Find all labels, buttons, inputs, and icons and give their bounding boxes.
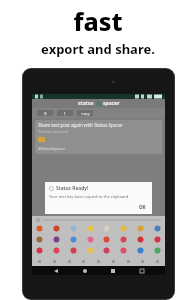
button[interactable]: Emoji xyxy=(53,236,60,243)
button[interactable]: Emoji xyxy=(137,225,144,232)
button[interactable]: Emoji xyxy=(120,236,127,243)
staticText: copy xyxy=(81,111,90,116)
button[interactable]: Emoji xyxy=(87,236,94,243)
button[interactable]: Emoji xyxy=(36,236,43,243)
staticText: export and share. xyxy=(41,40,155,58)
button[interactable]: Emoji xyxy=(87,247,94,254)
staticText: OK xyxy=(139,204,146,210)
staticText: Share text post again with Status Spacer xyxy=(38,122,123,128)
button[interactable]: I xyxy=(57,110,73,116)
button[interactable]: Emoji xyxy=(103,247,110,254)
button[interactable]: Menu xyxy=(137,266,146,275)
button[interactable]: copy xyxy=(77,110,93,116)
button[interactable]: Emoji xyxy=(154,236,161,243)
button[interactable]: Emoji xyxy=(154,247,161,254)
staticText: status xyxy=(78,100,94,107)
button[interactable]: Share text post again with Status Spacer xyxy=(35,120,162,154)
button[interactable]: Emoji xyxy=(53,225,60,232)
staticText: spacer xyxy=(103,100,120,107)
staticText: #StatusSpacer xyxy=(38,146,66,151)
button[interactable]: Home xyxy=(80,266,89,275)
staticText: fast xyxy=(73,4,123,38)
button[interactable]: Emoji xyxy=(36,225,43,232)
button[interactable]: Emoji xyxy=(70,247,77,254)
button[interactable]: Emoji xyxy=(103,225,110,232)
button[interactable]: Emoji xyxy=(70,225,77,232)
staticText: Status Ready! xyxy=(56,185,89,192)
button[interactable]: Emoji xyxy=(154,225,161,232)
staticText: I xyxy=(64,111,66,116)
staticText: Your text has been copied to the clipboa… xyxy=(49,194,129,199)
button[interactable]: Recents xyxy=(108,266,117,275)
staticText: B xyxy=(44,111,47,116)
button[interactable]: Emoji xyxy=(36,247,43,254)
button[interactable]: Emoji xyxy=(87,225,94,232)
button[interactable]: Emoji xyxy=(137,236,144,243)
button[interactable]: Emoji xyxy=(103,236,110,243)
button[interactable]: Emoji xyxy=(53,247,60,254)
button[interactable]: Emoji xyxy=(120,225,127,232)
button[interactable]: B xyxy=(37,110,53,116)
button[interactable]: Emoji xyxy=(137,247,144,254)
button[interactable]: Emoji xyxy=(70,236,77,243)
button[interactable]: Back xyxy=(51,266,60,275)
button[interactable]: Emoji xyxy=(120,247,127,254)
staticText: Further yourself xyxy=(38,129,69,134)
button[interactable]: OK xyxy=(137,203,148,211)
